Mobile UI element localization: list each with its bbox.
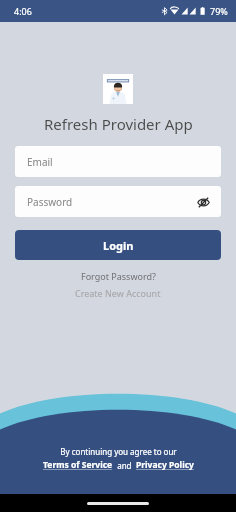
button[interactable]: Login [15,230,221,260]
staticText: Privacy Policy [136,459,194,471]
staticText: Email [27,155,53,169]
staticText: 79% [210,5,228,17]
button[interactable]: Email [15,146,221,177]
button[interactable]: Create New Account [69,286,167,300]
staticText: Forgot Password? [81,270,156,282]
staticText: By continuing you agree to our [60,446,177,457]
button[interactable]: Forgot Password? [75,269,162,283]
button[interactable]: Terms of Service [43,459,113,471]
button[interactable]: Password [15,186,221,217]
staticText: Refresh Provider App [44,114,193,134]
button[interactable]: Show password [193,192,213,212]
staticText: and [113,460,136,471]
staticText: Login [103,238,134,253]
staticText: 4:06 [14,5,32,17]
staticText: Terms of Service [43,459,113,471]
staticText: Password [27,195,73,209]
staticText: Create New Account [75,287,161,299]
button[interactable]: Privacy Policy [136,459,194,471]
